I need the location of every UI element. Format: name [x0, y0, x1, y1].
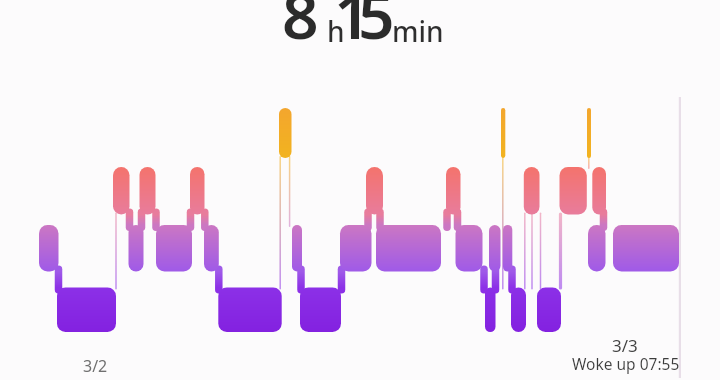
staticText: 3/3	[612, 334, 638, 357]
button[interactable]	[280, 0, 435, 42]
staticText: h	[327, 12, 345, 50]
staticText: 1	[334, 0, 371, 58]
staticText: 5	[358, 0, 395, 58]
staticText: 3/2	[83, 355, 108, 377]
staticText: 8	[282, 0, 319, 58]
staticText: min	[392, 12, 444, 50]
staticText: Woke up 07:55	[572, 353, 680, 374]
